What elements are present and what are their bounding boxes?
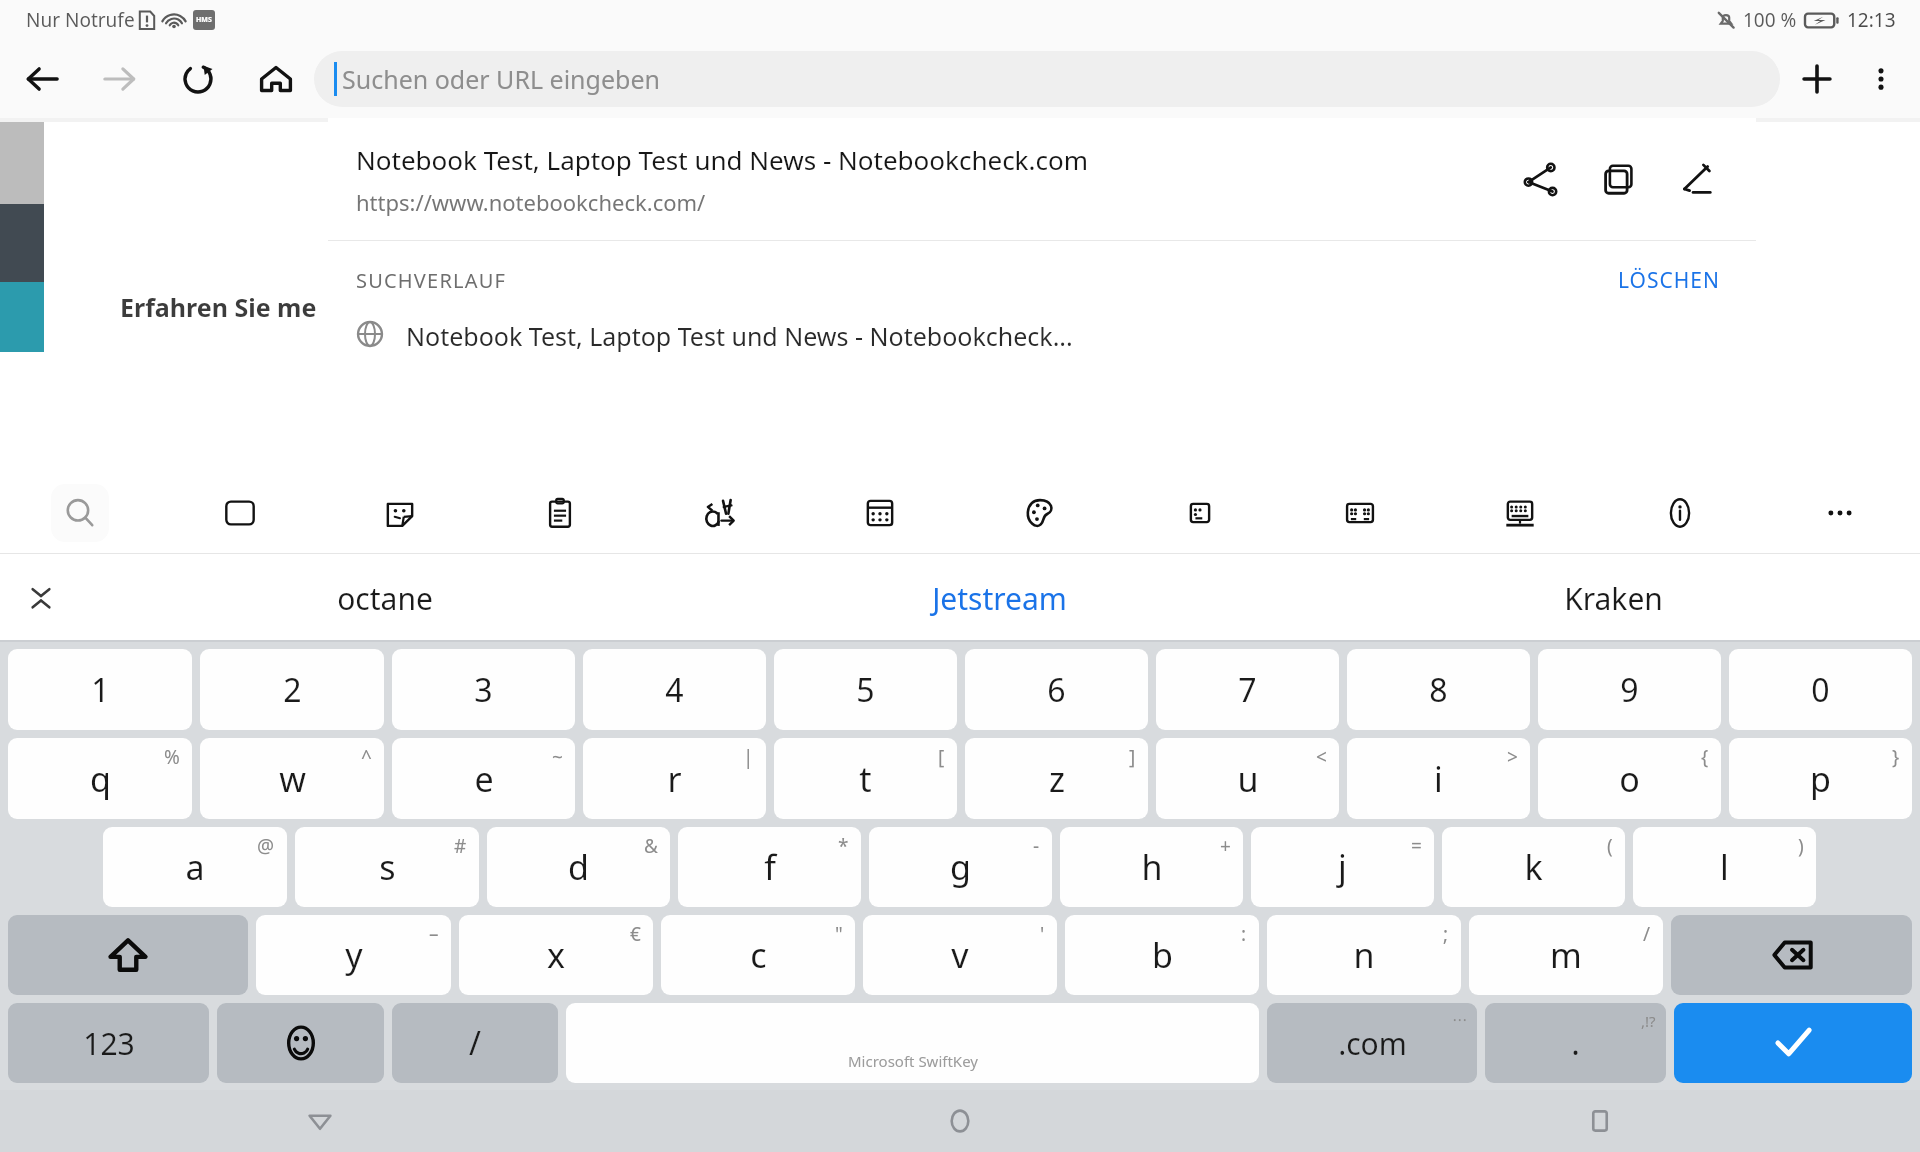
staticText: 6 xyxy=(1047,668,1066,712)
button[interactable]: r xyxy=(583,738,766,819)
staticText: 5 xyxy=(856,668,875,712)
button[interactable]: 2 xyxy=(200,649,384,730)
button[interactable]: a xyxy=(103,827,287,907)
button[interactable]: e xyxy=(392,738,575,819)
button[interactable]: b xyxy=(1065,915,1259,995)
staticText: ⋯ xyxy=(1452,1011,1467,1028)
button[interactable]: Backspace xyxy=(1671,915,1912,995)
button[interactable]: 7 xyxy=(1156,649,1339,730)
button[interactable]: Recent apps xyxy=(1280,1090,1920,1152)
button[interactable]: f xyxy=(678,827,861,907)
button[interactable]: Home xyxy=(640,1090,1280,1152)
button[interactable]: Jetstream xyxy=(692,554,1306,642)
button[interactable]: Translate xyxy=(640,472,800,554)
button[interactable]: octane xyxy=(78,554,692,642)
staticText: Microsoft SwiftKey xyxy=(848,1051,978,1071)
button[interactable]: Copy xyxy=(1592,153,1644,205)
button[interactable]: Reload xyxy=(176,57,220,101)
button[interactable]: Suchen oder URL eingeben xyxy=(314,51,1780,107)
staticText: & xyxy=(644,833,658,859)
staticText: + xyxy=(1220,833,1231,859)
staticText: 1 xyxy=(91,668,110,712)
button[interactable]: Split keyboard xyxy=(1280,472,1440,554)
staticText: r xyxy=(667,756,682,802)
button[interactable]: More xyxy=(1760,472,1920,554)
button[interactable]: t xyxy=(774,738,957,819)
button[interactable]: Stickers xyxy=(320,472,480,554)
button[interactable]: 123 xyxy=(8,1003,209,1083)
button[interactable]: v xyxy=(863,915,1057,995)
button[interactable]: z xyxy=(965,738,1148,819)
button[interactable]: Collapse xyxy=(18,575,64,621)
button[interactable]: / xyxy=(392,1003,558,1083)
button[interactable]: d xyxy=(487,827,670,907)
staticText: = xyxy=(1411,833,1422,859)
staticText: 2 xyxy=(283,668,302,712)
button[interactable]: Floating keyboard xyxy=(1440,472,1600,554)
button[interactable]: Share link xyxy=(1514,153,1566,205)
button[interactable]: Emoji xyxy=(217,1003,384,1083)
button[interactable]: 6 xyxy=(965,649,1148,730)
button[interactable]: 1 xyxy=(8,649,192,730)
button[interactable]: u xyxy=(1156,738,1339,819)
button[interactable]: Themes xyxy=(960,472,1120,554)
button[interactable]: h xyxy=(1060,827,1243,907)
button[interactable]: Kraken xyxy=(1306,554,1920,642)
button[interactable]: Calendar xyxy=(800,472,960,554)
button[interactable]: Notebook Test, Laptop Test und News - No… xyxy=(328,118,1756,240)
button[interactable]: 4 xyxy=(583,649,766,730)
button[interactable]: One-handed xyxy=(1120,472,1280,554)
button[interactable]: GIF xyxy=(160,472,320,554)
button[interactable]: w xyxy=(200,738,384,819)
button[interactable]: 5 xyxy=(774,649,957,730)
button[interactable]: Info xyxy=(1600,472,1760,554)
staticText: 8 xyxy=(1429,668,1448,712)
button[interactable]: m xyxy=(1469,915,1663,995)
staticText: : xyxy=(1241,921,1247,947)
button[interactable]: Search xyxy=(0,472,160,554)
button[interactable]: q xyxy=(8,738,192,819)
button[interactable]: 9 xyxy=(1538,649,1721,730)
staticText: ] xyxy=(1129,744,1136,770)
staticText: n xyxy=(1353,932,1375,978)
button[interactable]: More options xyxy=(1860,58,1902,100)
button[interactable]: Home xyxy=(254,57,298,101)
staticText: x xyxy=(547,932,565,978)
button[interactable]: c xyxy=(661,915,855,995)
staticText: a xyxy=(185,844,205,890)
button[interactable]: p xyxy=(1729,738,1912,819)
button[interactable]: y xyxy=(256,915,451,995)
button[interactable]: g xyxy=(869,827,1052,907)
button[interactable]: . xyxy=(1485,1003,1666,1083)
staticText: o xyxy=(1619,756,1640,802)
button[interactable]: Shift xyxy=(8,915,248,995)
button[interactable]: k xyxy=(1442,827,1625,907)
staticText: { xyxy=(1701,744,1709,770)
button[interactable]: 3 xyxy=(392,649,575,730)
button[interactable]: LÖSCHEN xyxy=(1610,258,1728,303)
button[interactable]: Clipboard xyxy=(480,472,640,554)
button[interactable]: 8 xyxy=(1347,649,1530,730)
button[interactable]: x xyxy=(459,915,653,995)
button[interactable]: Back xyxy=(20,57,64,101)
staticText: SUCHVERLAUF xyxy=(356,267,507,294)
button[interactable]: l xyxy=(1633,827,1816,907)
button[interactable]: Enter xyxy=(1674,1003,1912,1083)
staticText: % xyxy=(164,744,180,770)
button[interactable]: o xyxy=(1538,738,1721,819)
button[interactable]: Back xyxy=(0,1090,640,1152)
button[interactable]: i xyxy=(1347,738,1530,819)
button[interactable]: .com xyxy=(1267,1003,1477,1083)
button[interactable]: Notebook Test, Laptop Test und News - No… xyxy=(328,319,1756,365)
button[interactable]: Forward xyxy=(98,57,142,101)
button[interactable]: s xyxy=(295,827,479,907)
button[interactable]: New tab xyxy=(1794,56,1840,102)
button[interactable]: j xyxy=(1251,827,1434,907)
staticText: l xyxy=(1720,844,1729,890)
staticText: | xyxy=(743,744,754,770)
button[interactable]: Space xyxy=(566,1003,1259,1083)
button[interactable]: n xyxy=(1267,915,1461,995)
button[interactable]: Edit xyxy=(1670,153,1722,205)
button[interactable]: 0 xyxy=(1729,649,1912,730)
staticText: j xyxy=(1338,844,1347,890)
